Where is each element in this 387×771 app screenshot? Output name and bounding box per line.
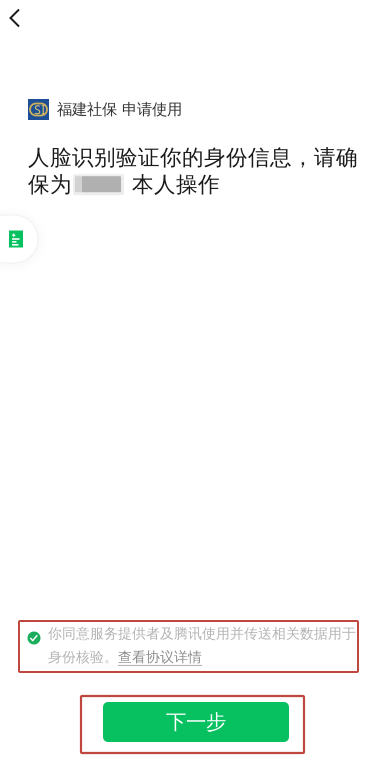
staticText: SI: [34, 101, 45, 118]
button[interactable]: 你同意服务提供者及腾讯使用并传送相关数据用于: [18, 620, 358, 672]
staticText: 福建社保 申请使用: [57, 100, 182, 119]
button[interactable]: Back: [0, 0, 34, 36]
staticText: 你同意服务提供者及腾讯使用并传送相关数据用于: [48, 625, 356, 642]
staticText: 人脸识别验证你的身份信息，请确: [28, 144, 358, 171]
staticText: 本人操作: [132, 171, 220, 198]
staticText: 身份核验。: [48, 648, 118, 666]
staticText: 保为: [28, 171, 72, 198]
staticText: 下一步: [166, 709, 226, 735]
staticText: 查看协议详情: [118, 648, 202, 666]
button[interactable]: 下一步: [103, 702, 289, 742]
button[interactable]: Mini program card: [0, 215, 38, 263]
